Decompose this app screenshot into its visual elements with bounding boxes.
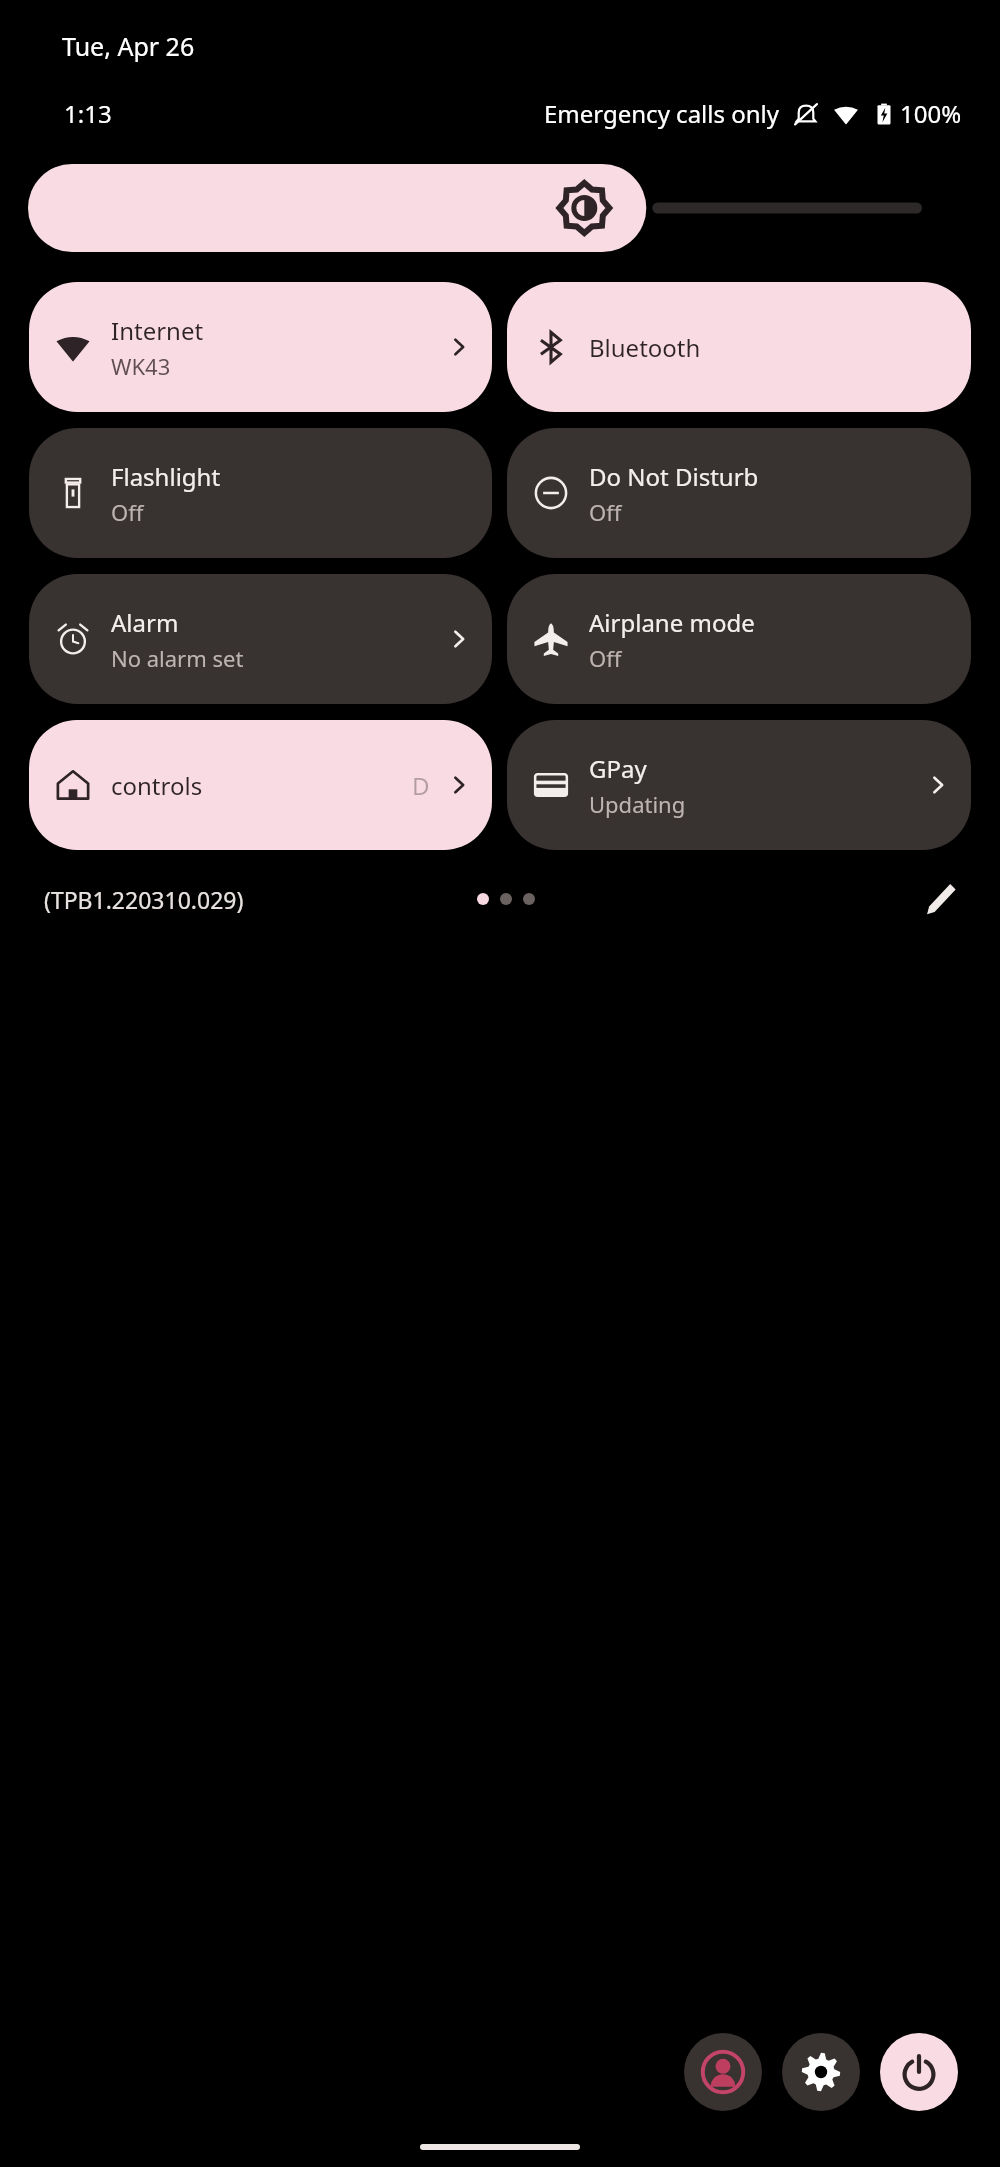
staticText: controls xyxy=(111,769,203,802)
button[interactable]: Power xyxy=(880,2033,958,2111)
button[interactable]: User xyxy=(684,2033,762,2111)
staticText: WK43 xyxy=(111,351,171,381)
button[interactable]: Settings xyxy=(782,2033,860,2111)
staticText: Flashlight xyxy=(111,460,221,493)
button[interactable]: Edit tiles xyxy=(916,875,964,923)
staticText: Do Not Disturb xyxy=(589,460,759,493)
button[interactable]: Alarm xyxy=(29,574,492,704)
staticText: 1:13 xyxy=(64,97,112,130)
button[interactable]: Device controls xyxy=(29,720,492,850)
staticText: Internet xyxy=(111,314,204,347)
button[interactable]: Airplane mode xyxy=(507,574,971,704)
button[interactable]: Bluetooth xyxy=(507,282,971,412)
staticText: Alarm xyxy=(111,606,179,639)
staticText: (TPB1.220310.029) xyxy=(44,884,244,915)
other: Wi-Fi xyxy=(833,101,859,127)
staticText: GPay xyxy=(589,752,647,785)
button[interactable]: Flashlight xyxy=(29,428,492,558)
staticText: Off xyxy=(589,643,622,673)
button[interactable]: Brightness xyxy=(28,164,972,252)
button[interactable]: Internet xyxy=(29,282,492,412)
other: Silent xyxy=(793,101,819,127)
staticText: Off xyxy=(589,497,622,527)
staticText: Off xyxy=(111,497,144,527)
staticText: No alarm set xyxy=(111,643,244,673)
other: Battery charging xyxy=(871,101,897,127)
staticText: Airplane mode xyxy=(589,606,755,639)
button[interactable]: Do Not Disturb xyxy=(507,428,971,558)
staticText: D xyxy=(412,769,430,802)
staticText: Emergency calls only xyxy=(544,97,780,130)
staticText: 100% xyxy=(900,97,962,130)
staticText: Bluetooth xyxy=(589,331,701,364)
staticText: Updating xyxy=(589,789,686,819)
button[interactable]: GPay xyxy=(507,720,971,850)
staticText: Tue, Apr 26 xyxy=(62,29,195,63)
